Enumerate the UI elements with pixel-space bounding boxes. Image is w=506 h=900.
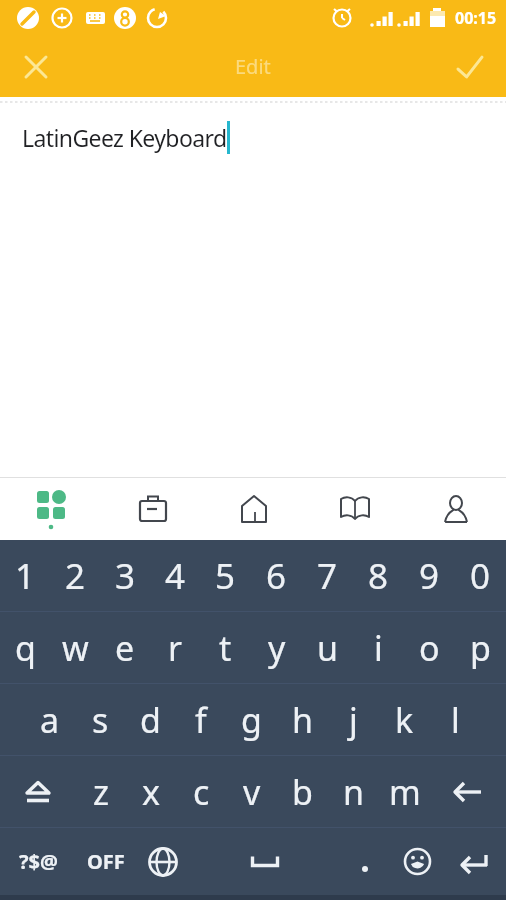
button[interactable]: l xyxy=(430,684,481,755)
button[interactable]: 7 xyxy=(302,540,353,611)
staticText: c xyxy=(193,769,210,815)
staticText: h xyxy=(292,697,314,743)
staticText: ?$@ xyxy=(19,848,58,875)
button[interactable] xyxy=(454,51,486,83)
button[interactable]: x xyxy=(126,756,176,827)
staticText: q xyxy=(15,625,36,671)
button[interactable]: d xyxy=(125,684,175,755)
button[interactable]: s xyxy=(75,684,125,755)
staticText: 8 xyxy=(368,552,389,600)
button[interactable] xyxy=(0,756,76,827)
button[interactable]: y xyxy=(251,612,302,683)
button[interactable] xyxy=(430,756,506,827)
button[interactable] xyxy=(102,478,203,540)
button[interactable] xyxy=(190,828,340,895)
staticText: Edit xyxy=(235,53,271,80)
staticText: r xyxy=(168,625,183,671)
staticText: 3 xyxy=(115,552,136,600)
staticText: 5 xyxy=(215,552,236,600)
button[interactable] xyxy=(340,828,390,895)
button[interactable]: v xyxy=(226,756,277,827)
staticText: d xyxy=(140,697,161,743)
button[interactable]: o xyxy=(404,612,455,683)
staticText: u xyxy=(317,625,339,671)
staticText: k xyxy=(395,697,414,743)
staticText: OFF xyxy=(87,848,125,875)
staticText: i xyxy=(374,625,383,671)
staticText: n xyxy=(343,769,365,815)
staticText: g xyxy=(241,697,262,743)
button[interactable]: 0 xyxy=(455,540,506,611)
button[interactable]: g xyxy=(226,684,277,755)
button[interactable]: h xyxy=(277,684,328,755)
button[interactable]: k xyxy=(379,684,430,755)
button[interactable]: 4 xyxy=(150,540,200,611)
button[interactable]: w xyxy=(50,612,100,683)
staticText: 4 xyxy=(165,552,186,600)
staticText: e xyxy=(115,625,135,671)
button[interactable]: 6 xyxy=(251,540,302,611)
staticText: l xyxy=(451,697,460,743)
staticText: t xyxy=(219,625,232,671)
button[interactable] xyxy=(0,478,102,540)
button[interactable] xyxy=(136,828,190,895)
button[interactable]: OFF xyxy=(76,828,136,895)
staticText: y xyxy=(268,625,286,671)
staticText: f xyxy=(195,697,207,743)
button[interactable]: a xyxy=(25,684,75,755)
staticText: v xyxy=(243,769,261,815)
staticText: 1 xyxy=(15,552,36,600)
staticText: b xyxy=(292,769,313,815)
button[interactable]: 9 xyxy=(404,540,455,611)
button[interactable]: 3 xyxy=(100,540,150,611)
staticText: a xyxy=(40,697,60,743)
button[interactable]: m xyxy=(379,756,430,827)
button[interactable]: f xyxy=(175,684,226,755)
button[interactable] xyxy=(405,478,506,540)
staticText: 0 xyxy=(470,552,491,600)
button[interactable]: q xyxy=(0,612,50,683)
button[interactable]: i xyxy=(353,612,404,683)
staticText: 2 xyxy=(65,552,86,600)
staticText: s xyxy=(92,697,109,743)
button[interactable]: ?$@ xyxy=(0,828,76,895)
staticText: 6 xyxy=(266,552,287,600)
button[interactable]: 8 xyxy=(353,540,404,611)
button[interactable]: z xyxy=(76,756,126,827)
button[interactable] xyxy=(390,828,444,895)
button[interactable] xyxy=(20,51,52,83)
button[interactable] xyxy=(444,828,506,895)
button[interactable]: e xyxy=(100,612,150,683)
button[interactable]: c xyxy=(176,756,226,827)
button[interactable]: 1 xyxy=(0,540,50,611)
staticText: p xyxy=(470,625,491,671)
button[interactable]: j xyxy=(328,684,379,755)
button[interactable] xyxy=(304,478,405,540)
button[interactable]: u xyxy=(302,612,353,683)
button[interactable]: 2 xyxy=(50,540,100,611)
staticText: LatinGeez Keyboard xyxy=(22,122,227,153)
button[interactable]: 5 xyxy=(200,540,251,611)
button[interactable]: r xyxy=(150,612,200,683)
button[interactable]: p xyxy=(455,612,506,683)
button[interactable]: b xyxy=(277,756,328,827)
staticText: 00:15 xyxy=(455,7,497,29)
staticText: 9 xyxy=(419,552,440,600)
button[interactable] xyxy=(203,478,304,540)
staticText: 7 xyxy=(317,552,338,600)
button[interactable]: t xyxy=(200,612,251,683)
staticText: x xyxy=(142,769,160,815)
button[interactable]: n xyxy=(328,756,379,827)
staticText: z xyxy=(93,769,109,815)
staticText: m xyxy=(389,769,421,815)
staticText: o xyxy=(419,625,440,671)
staticText: j xyxy=(349,697,358,743)
staticText: w xyxy=(62,625,89,671)
